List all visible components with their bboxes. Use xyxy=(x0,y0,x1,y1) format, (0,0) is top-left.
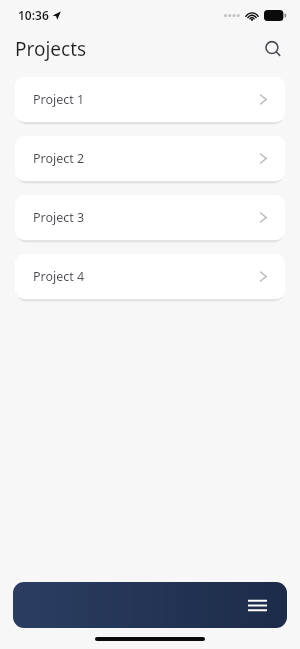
button[interactable]: Project 1 xyxy=(15,77,285,122)
staticText: Project 4 xyxy=(33,268,259,285)
staticText: Project 3 xyxy=(33,209,259,226)
staticText: Project 2 xyxy=(33,150,259,167)
button[interactable]: Project 4 xyxy=(15,254,285,299)
button[interactable]: Project 2 xyxy=(15,136,285,181)
button[interactable]: Search xyxy=(257,33,289,65)
staticText: 10:36 xyxy=(18,7,49,23)
button[interactable]: Menu xyxy=(241,589,273,621)
staticText: Projects xyxy=(15,36,87,62)
button[interactable]: Project 3 xyxy=(15,195,285,240)
staticText: Project 1 xyxy=(33,91,259,108)
